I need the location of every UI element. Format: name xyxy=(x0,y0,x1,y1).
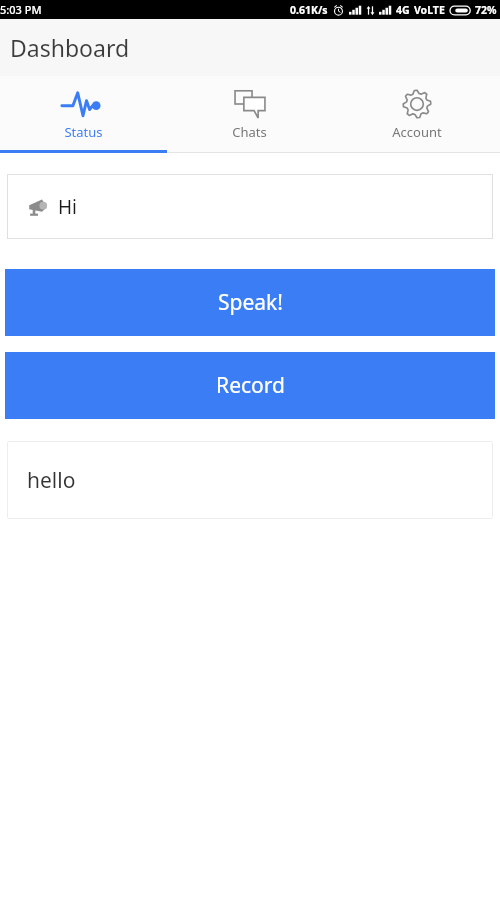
button[interactable]: Account xyxy=(333,76,500,153)
staticText: Hi xyxy=(58,194,77,220)
staticText: VoLTE xyxy=(414,3,445,17)
staticText: 0.61K/s xyxy=(290,3,328,17)
button[interactable]: Hi xyxy=(7,174,493,239)
staticText: 5:03 PM xyxy=(0,2,42,17)
staticText: Speak! xyxy=(218,288,283,317)
button[interactable]: Speak! xyxy=(5,269,495,336)
staticText: Status xyxy=(64,123,103,141)
staticText: Account xyxy=(392,123,442,141)
staticText: 72% xyxy=(475,3,497,17)
button[interactable]: Record xyxy=(5,352,495,419)
staticText: Dashboard xyxy=(10,32,130,63)
staticText: Chats xyxy=(232,123,267,141)
button[interactable]: Chats xyxy=(166,76,333,153)
button[interactable]: hello xyxy=(7,441,493,519)
staticText: 4G xyxy=(396,3,410,17)
staticText: hello xyxy=(27,466,76,495)
staticText: Record xyxy=(216,371,285,400)
button[interactable]: Status xyxy=(0,76,166,153)
